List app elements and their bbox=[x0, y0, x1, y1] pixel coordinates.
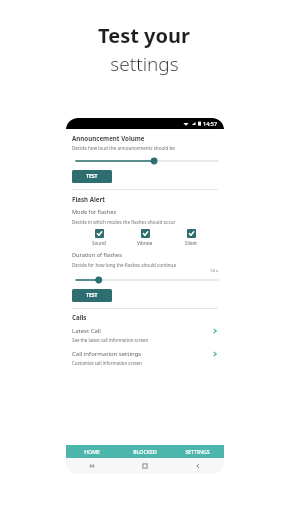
button[interactable] bbox=[72, 155, 218, 167]
staticText: SETTINGS bbox=[185, 448, 210, 455]
button[interactable]: TEST bbox=[72, 289, 112, 302]
staticText: Silent bbox=[185, 240, 197, 246]
staticText: Vibrate bbox=[137, 240, 153, 246]
button[interactable]: Vibrate bbox=[122, 229, 168, 246]
button[interactable]: SETTINGS bbox=[171, 445, 224, 458]
staticText: 14 s bbox=[210, 268, 218, 274]
staticText: Test your bbox=[98, 22, 190, 49]
staticText: Flash Alert bbox=[72, 195, 105, 203]
staticText: Calls bbox=[72, 313, 87, 321]
button[interactable]: Latest Call bbox=[72, 325, 218, 345]
button[interactable]: HOME bbox=[66, 445, 118, 458]
button[interactable] bbox=[72, 274, 218, 286]
staticText: Decide in which modes the flashes should… bbox=[72, 219, 176, 225]
staticText: Call information settings bbox=[72, 350, 142, 358]
button[interactable]: TEST bbox=[72, 170, 112, 183]
staticText: settings bbox=[110, 51, 179, 77]
staticText: HOME bbox=[84, 448, 100, 455]
staticText: TEST bbox=[86, 173, 98, 180]
staticText: Latest Call bbox=[72, 327, 101, 335]
staticText: Mode for flashes bbox=[72, 208, 117, 216]
button[interactable]: Sound bbox=[76, 229, 122, 246]
staticText: 14:57 bbox=[203, 120, 218, 127]
staticText: See the latest call information screen bbox=[72, 337, 149, 343]
staticText: Announcement Volume bbox=[72, 134, 145, 142]
button[interactable]: Silent bbox=[168, 229, 214, 246]
staticText: Decide how loud the announcements should… bbox=[72, 145, 175, 151]
button[interactable]: Back bbox=[171, 458, 224, 474]
staticText: Duration of flashes bbox=[72, 251, 122, 259]
button[interactable]: Call information settings bbox=[72, 348, 218, 368]
button[interactable]: Home bbox=[118, 458, 171, 474]
button[interactable]: Recents bbox=[66, 458, 118, 474]
staticText: Decide for how long the flashes should c… bbox=[72, 262, 177, 268]
staticText: Sound bbox=[92, 240, 106, 246]
staticText: BLOCKED bbox=[133, 448, 157, 455]
button[interactable]: BLOCKED bbox=[118, 445, 171, 458]
staticText: TEST bbox=[86, 292, 98, 299]
staticText: Customize call information screen bbox=[72, 360, 142, 366]
